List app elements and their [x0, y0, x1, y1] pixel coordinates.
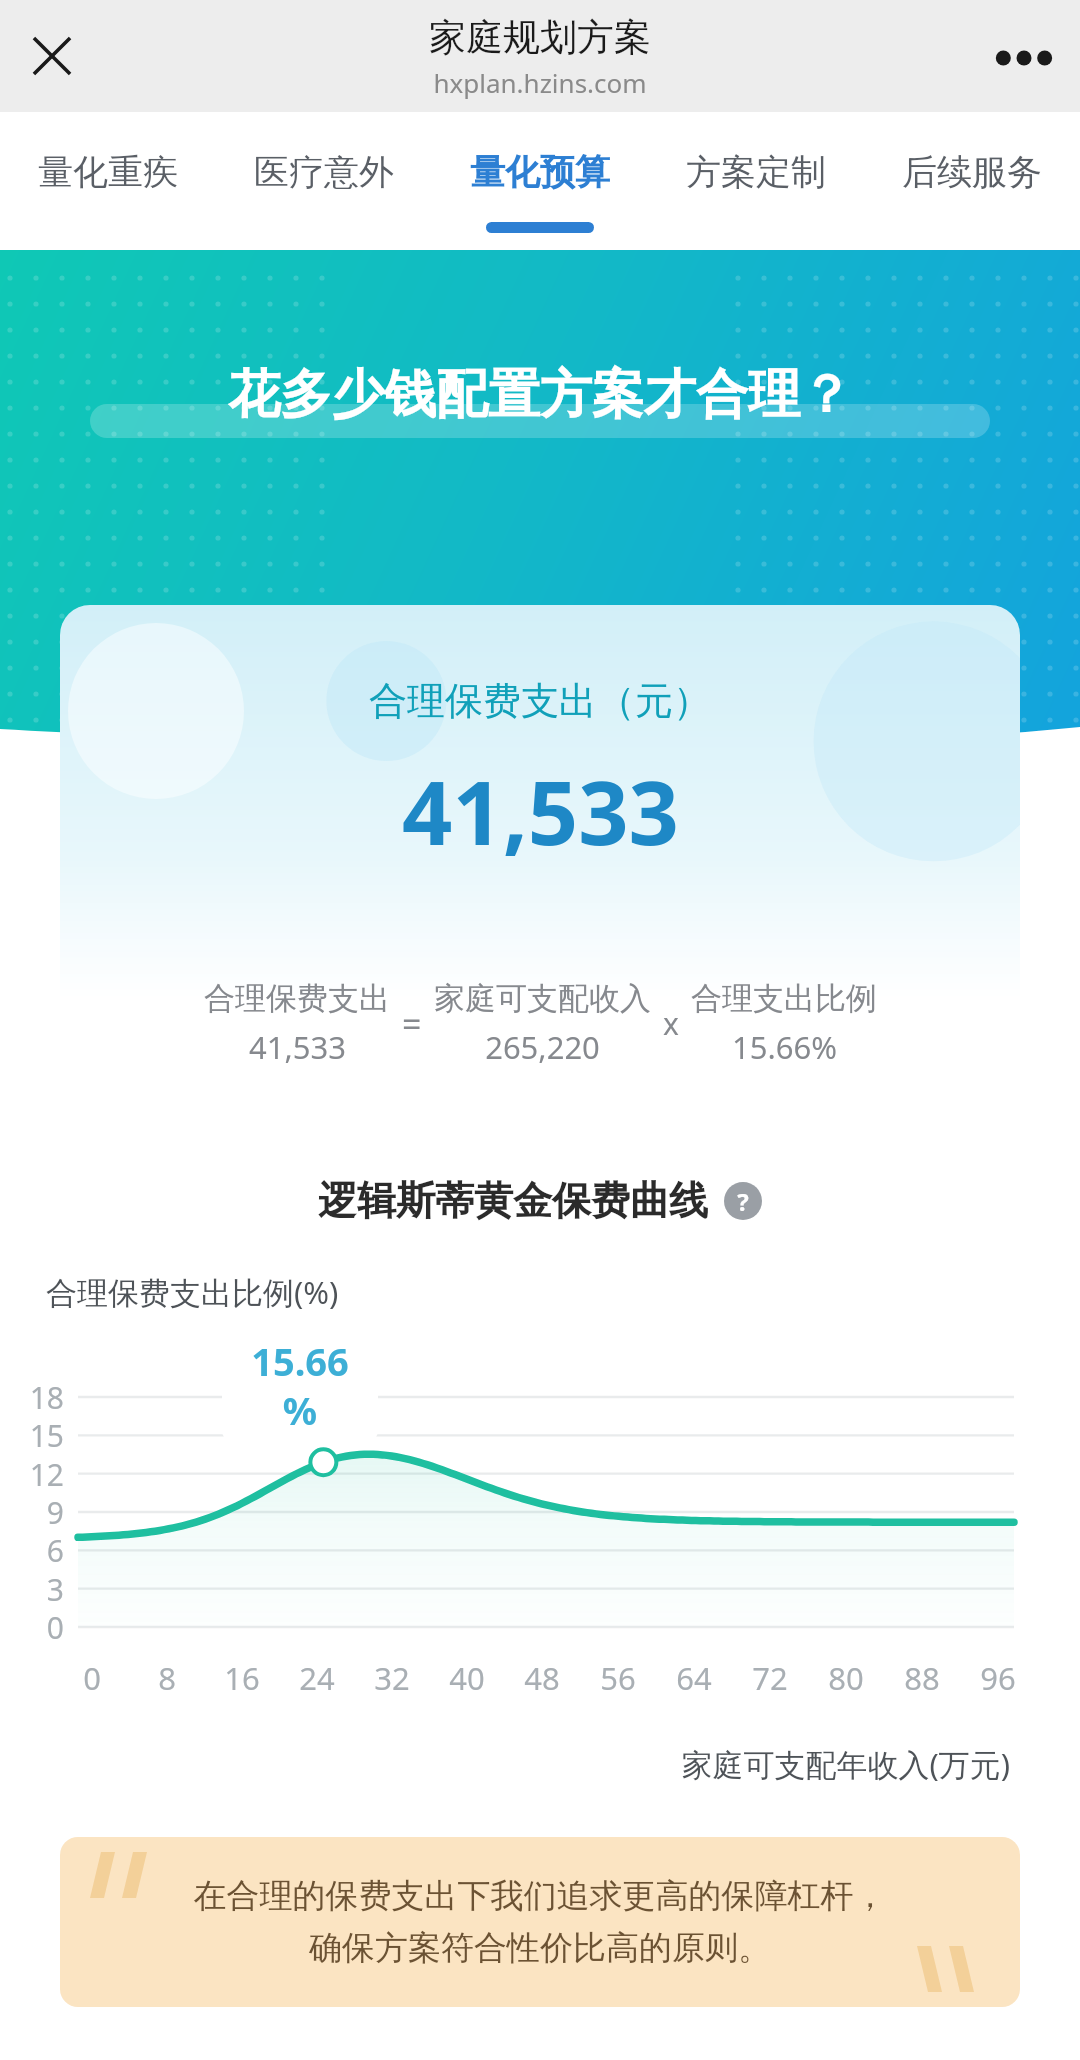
button[interactable]: 方案定制: [648, 112, 864, 250]
staticText: 合理保费支出（元）: [369, 677, 711, 725]
staticText: 合理保费支出比例(%): [46, 1271, 339, 1313]
staticText: 15.66%: [732, 1026, 837, 1068]
button[interactable]: 医疗意外: [216, 112, 432, 250]
staticText: 40: [449, 1657, 485, 1699]
staticText: 72: [752, 1657, 788, 1699]
staticText: 在合理的保费支出下我们追求更高的保障杠杆，: [60, 1875, 1020, 1917]
staticText: 48: [524, 1657, 560, 1699]
staticText: 88: [904, 1657, 940, 1699]
staticText: 逻辑斯蒂黄金保费曲线: [318, 1176, 708, 1225]
staticText: 合理支出比例: [691, 979, 877, 1018]
staticText: 6: [4, 1530, 64, 1571]
staticText: 家庭可支配收入: [434, 979, 651, 1018]
button[interactable]: 量化预算: [432, 112, 648, 250]
staticText: 15: [4, 1415, 64, 1456]
staticText: 56: [600, 1657, 636, 1699]
staticText: 15.66%: [240, 1335, 360, 1436]
button[interactable]: 量化重疾: [0, 112, 216, 250]
staticText: 80: [828, 1657, 864, 1699]
staticText: 96: [980, 1657, 1016, 1699]
button[interactable]: Help about the logistic premium curve: [724, 1182, 762, 1220]
staticText: 确保方案符合性价比高的原则。: [60, 1927, 1020, 1969]
button[interactable]: Close: [10, 14, 94, 98]
staticText: 32: [374, 1657, 410, 1699]
staticText: 0: [4, 1607, 64, 1648]
staticText: 量化重疾: [38, 150, 178, 194]
staticText: ?: [737, 1185, 749, 1218]
button[interactable]: More options: [982, 16, 1066, 100]
staticText: 8: [158, 1657, 176, 1699]
staticText: 18: [4, 1377, 64, 1418]
staticText: 家庭规划方案: [429, 14, 651, 61]
staticText: 12: [4, 1454, 64, 1495]
staticText: x: [663, 1003, 679, 1044]
button[interactable]: 后续服务: [864, 112, 1080, 250]
staticText: 41,533: [402, 751, 679, 871]
staticText: 16: [224, 1657, 260, 1699]
staticText: 量化预算: [470, 150, 610, 194]
staticText: 64: [676, 1657, 712, 1699]
staticText: 9: [4, 1492, 64, 1533]
staticText: 后续服务: [902, 150, 1042, 194]
staticText: hxplan.hzins.com: [433, 65, 647, 100]
staticText: 医疗意外: [254, 150, 394, 194]
staticText: 0: [83, 1657, 101, 1699]
staticText: 265,220: [485, 1026, 600, 1068]
staticText: 花多少钱配置方案才合理？: [0, 362, 1080, 428]
staticText: 方案定制: [686, 150, 826, 194]
staticText: 家庭可支配年收入(万元): [0, 1743, 1010, 1785]
staticText: =: [402, 1001, 422, 1047]
staticText: 41,533: [249, 1026, 346, 1068]
staticText: 24: [299, 1657, 335, 1699]
staticText: 3: [4, 1569, 64, 1610]
button[interactable]: 在合理的保费支出下我们追求更高的保障杠杆，: [60, 1837, 1020, 2007]
staticText: 合理保费支出: [204, 979, 390, 1018]
button[interactable]: 合理保费支出（元）: [60, 605, 1020, 1110]
